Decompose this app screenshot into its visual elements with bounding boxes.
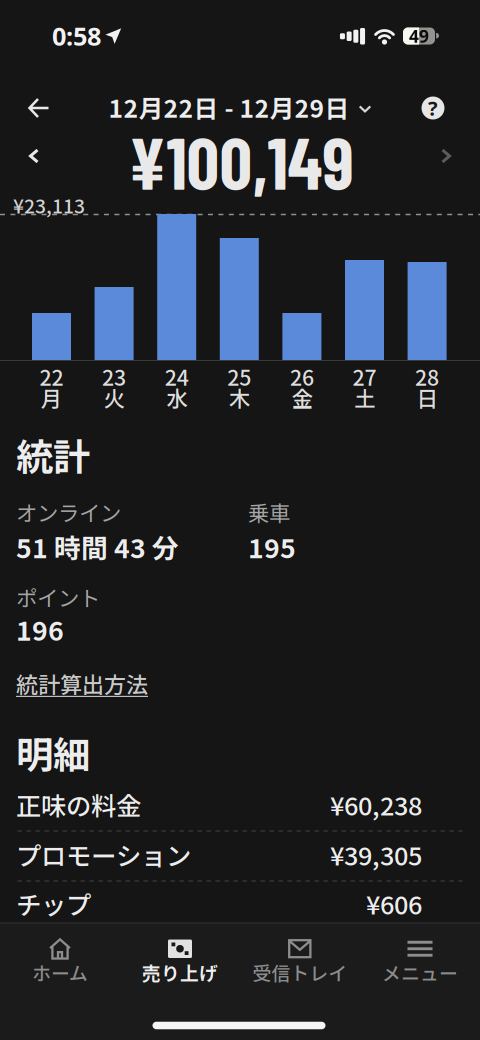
staticText: 49 [409,24,429,47]
button[interactable]: ホーム [0,937,120,982]
staticText: メニュー [382,959,458,986]
button[interactable]: Previous week [29,148,39,163]
staticText: ホーム [32,959,88,986]
staticText: 正味の料金 [16,786,141,823]
staticText: 28 [415,361,439,392]
staticText: 乗車 [248,497,290,527]
staticText: 土 [354,382,375,413]
staticText: 12月22日 - 12月29日 [108,89,349,125]
staticText: 26 [290,361,314,392]
button[interactable]: 受信トレイ [240,937,360,982]
button[interactable]: メニュー [360,937,480,982]
staticText: チップ [16,885,91,922]
button[interactable]: Back [28,97,50,118]
staticText: ¥100,149 [128,118,353,204]
staticText: 23 [102,361,126,392]
staticText: 統計 [16,427,90,482]
staticText: 売り上げ [142,959,218,986]
staticText: 0:58 [52,19,101,53]
staticText: 月 [41,382,62,413]
staticText: 22 [39,361,63,392]
staticText: 日 [417,382,438,413]
button[interactable]: 統計算出方法 [16,671,148,695]
staticText: 27 [352,361,376,392]
button[interactable]: Help [421,96,444,119]
staticText: プロモーション [16,836,191,873]
staticText: 水 [166,382,187,413]
button[interactable]: 売り上げ [120,937,240,982]
staticText: 統計算出方法 [16,668,148,699]
button[interactable]: Next week [441,148,451,163]
staticText: 24 [165,361,189,392]
staticText: ¥39,305 [330,836,422,873]
staticText: ¥606 [366,885,422,922]
staticText: オンライン [16,497,121,527]
staticText: ¥23,113 [13,191,85,219]
staticText: 196 [16,610,64,648]
staticText: 受信トレイ [252,959,347,986]
staticText: 火 [104,382,125,413]
staticText: ポイント [16,582,100,612]
staticText: ? [428,95,438,121]
staticText: 金 [291,382,312,413]
button[interactable]: 12月22日 - 12月29日 [108,93,371,121]
staticText: 木 [229,382,250,413]
staticText: 51 時間 43 分 [16,527,179,566]
staticText: 25 [227,361,251,392]
staticText: ¥60,238 [330,786,422,823]
staticText: 195 [248,527,296,566]
staticText: 明細 [16,725,90,780]
